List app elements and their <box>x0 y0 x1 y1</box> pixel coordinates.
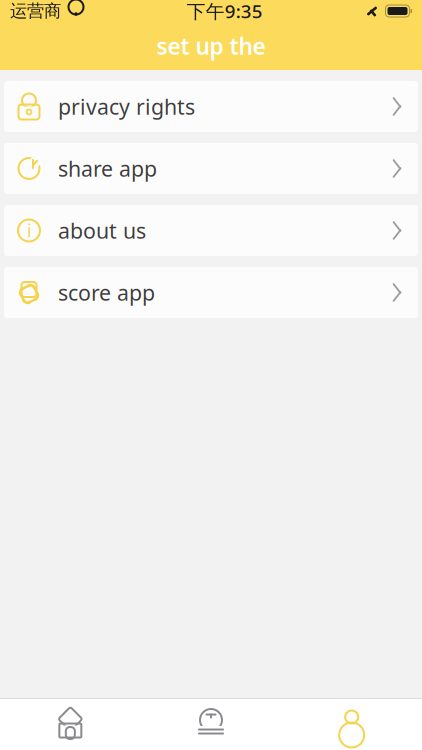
staticText: i <box>27 219 31 242</box>
button[interactable]: Profile <box>281 698 422 750</box>
staticText: 运营商 <box>10 0 61 22</box>
staticText: share app <box>58 154 157 183</box>
staticText: about us <box>58 216 146 245</box>
button[interactable]: score app <box>4 267 418 318</box>
button[interactable]: Service <box>141 698 281 750</box>
staticText: privacy rights <box>58 92 195 121</box>
button[interactable]: share app <box>4 143 418 194</box>
staticText: 下午9:35 <box>187 0 263 23</box>
button[interactable]: i <box>4 205 418 256</box>
button[interactable]: privacy rights <box>4 81 418 132</box>
button[interactable]: Home <box>0 698 141 750</box>
staticText: set up the <box>156 31 265 61</box>
staticText: score app <box>58 278 155 307</box>
